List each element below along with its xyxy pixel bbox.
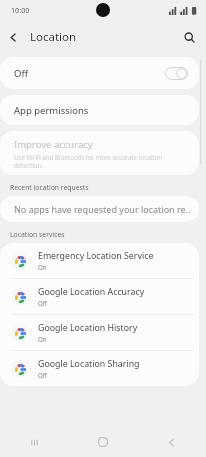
button[interactable]: Recents (0, 427, 68, 457)
staticText: Improve accuracy (14, 138, 93, 151)
staticText: No apps have requested your location re.… (14, 203, 191, 215)
button[interactable]: Search (177, 25, 201, 49)
staticText: Use Wi-Fi and Bluetooth for more accurat… (14, 153, 175, 169)
button[interactable]: Improve accuracy (0, 131, 199, 175)
staticText: Off (14, 67, 28, 80)
staticText: Google Location Sharing (38, 358, 140, 370)
button[interactable]: Google Location Sharing (0, 351, 199, 386)
staticText: Recent location requests (10, 183, 89, 192)
staticText: On (38, 335, 47, 343)
staticText: Emergency Location Service (38, 250, 154, 262)
staticText: 10:00 (11, 5, 30, 15)
button[interactable]: Off (0, 57, 199, 89)
button[interactable]: Location toggle, off (165, 67, 188, 80)
button[interactable]: App permissions (0, 95, 199, 125)
staticText: Location services (10, 230, 65, 239)
button[interactable]: Home (68, 427, 137, 457)
button[interactable]: Google Location History (0, 315, 199, 350)
button[interactable]: Google Location Accuracy (0, 279, 199, 314)
button[interactable]: Emergency Location Service (0, 243, 199, 278)
button[interactable]: Back (0, 24, 26, 50)
staticText: App permissions (14, 104, 89, 117)
staticText: Google Location Accuracy (38, 286, 145, 298)
staticText: Google Location History (38, 322, 138, 334)
staticText: Location (30, 29, 77, 45)
staticText: Off (38, 371, 48, 379)
staticText: On (38, 263, 47, 271)
staticText: Off (38, 299, 48, 307)
button[interactable]: Back (137, 427, 206, 457)
